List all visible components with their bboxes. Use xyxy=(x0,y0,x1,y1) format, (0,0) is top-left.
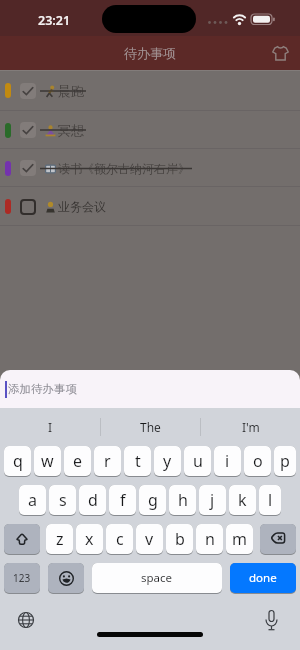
staticText: k xyxy=(238,489,247,511)
button[interactable]: l xyxy=(259,485,281,516)
staticText: g xyxy=(148,489,158,511)
button[interactable] xyxy=(48,563,84,594)
staticText: d xyxy=(88,489,98,511)
staticText: I xyxy=(48,419,53,435)
button[interactable]: I xyxy=(0,408,100,446)
button[interactable] xyxy=(260,524,296,555)
staticText: b xyxy=(175,528,185,550)
staticText: done xyxy=(249,570,277,586)
staticText: c xyxy=(116,528,124,550)
button[interactable]: m xyxy=(226,524,253,555)
button[interactable]: 添加待办事项 xyxy=(0,370,300,408)
staticText: q xyxy=(13,450,23,472)
button[interactable] xyxy=(272,45,289,62)
staticText: 待办事项 xyxy=(124,45,176,61)
button[interactable]: i xyxy=(214,446,241,477)
button[interactable] xyxy=(262,609,281,633)
button[interactable]: t xyxy=(124,446,151,477)
button[interactable]: y xyxy=(154,446,181,477)
staticText: w xyxy=(41,450,54,472)
staticText: 晨跑 xyxy=(58,83,84,99)
button[interactable]: space xyxy=(92,563,222,594)
staticText: p xyxy=(280,450,290,472)
button[interactable]: 晨跑 xyxy=(0,70,300,111)
button[interactable]: d xyxy=(79,485,106,516)
button[interactable]: done xyxy=(230,563,296,594)
button[interactable] xyxy=(4,524,40,555)
staticText: n xyxy=(205,528,215,550)
button[interactable]: w xyxy=(34,446,61,477)
staticText: j xyxy=(210,489,215,511)
staticText: 23:21 xyxy=(38,12,71,29)
button[interactable]: p xyxy=(274,446,296,477)
button[interactable] xyxy=(17,611,35,629)
button[interactable]: b xyxy=(166,524,193,555)
button[interactable]: The xyxy=(101,408,200,446)
staticText: space xyxy=(141,570,173,586)
button[interactable]: e xyxy=(64,446,91,477)
staticText: e xyxy=(73,450,83,472)
staticText: f xyxy=(120,489,126,511)
staticText: l xyxy=(268,489,273,511)
button[interactable]: r xyxy=(94,446,121,477)
staticText: v xyxy=(145,528,154,550)
button[interactable]: o xyxy=(244,446,271,477)
button[interactable]: f xyxy=(109,485,136,516)
staticText: y xyxy=(163,450,172,472)
button[interactable]: v xyxy=(136,524,163,555)
button[interactable]: n xyxy=(196,524,223,555)
staticText: I'm xyxy=(242,419,260,435)
button[interactable]: z xyxy=(46,524,73,555)
button[interactable]: x xyxy=(76,524,103,555)
staticText: i xyxy=(225,450,230,472)
button[interactable]: a xyxy=(19,485,46,516)
button[interactable]: q xyxy=(4,446,31,477)
button[interactable]: k xyxy=(229,485,256,516)
staticText: 添加待办事项 xyxy=(8,382,77,396)
button[interactable]: 读书《额尔古纳河右岸》 xyxy=(0,149,300,187)
staticText: 123 xyxy=(13,571,31,585)
staticText: m xyxy=(232,528,247,550)
button[interactable]: 冥想 xyxy=(0,111,300,149)
button[interactable]: c xyxy=(106,524,133,555)
button[interactable]: s xyxy=(49,485,76,516)
staticText: r xyxy=(104,450,111,472)
staticText: x xyxy=(85,528,94,550)
staticText: a xyxy=(28,489,37,511)
button[interactable]: h xyxy=(169,485,196,516)
staticText: 业务会议 xyxy=(58,199,106,214)
staticText: h xyxy=(178,489,188,511)
staticText: The xyxy=(140,419,161,435)
staticText: o xyxy=(253,450,263,472)
staticText: 冥想 xyxy=(58,122,84,138)
staticText: t xyxy=(135,450,141,472)
button[interactable]: 业务会议 xyxy=(0,187,300,226)
button[interactable]: u xyxy=(184,446,211,477)
staticText: u xyxy=(193,450,203,472)
staticText: z xyxy=(56,528,64,550)
button[interactable]: I'm xyxy=(201,408,300,446)
button[interactable]: g xyxy=(139,485,166,516)
button[interactable]: j xyxy=(199,485,226,516)
staticText: s xyxy=(59,489,67,511)
button[interactable]: 123 xyxy=(4,563,40,594)
staticText: 读书《额尔古纳河右岸》 xyxy=(58,161,190,176)
